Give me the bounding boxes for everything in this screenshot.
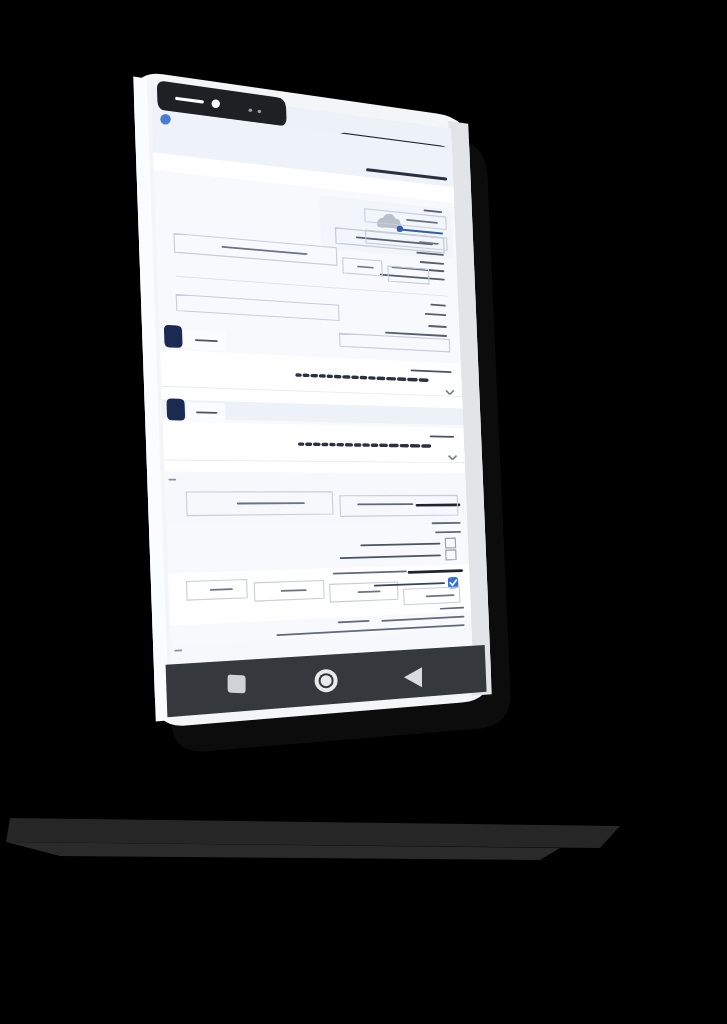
- button[interactable]: Phone mockup showing a form screen: [0, 0, 727, 1024]
- other: Phone mockup showing a form screen: [0, 0, 727, 1024]
